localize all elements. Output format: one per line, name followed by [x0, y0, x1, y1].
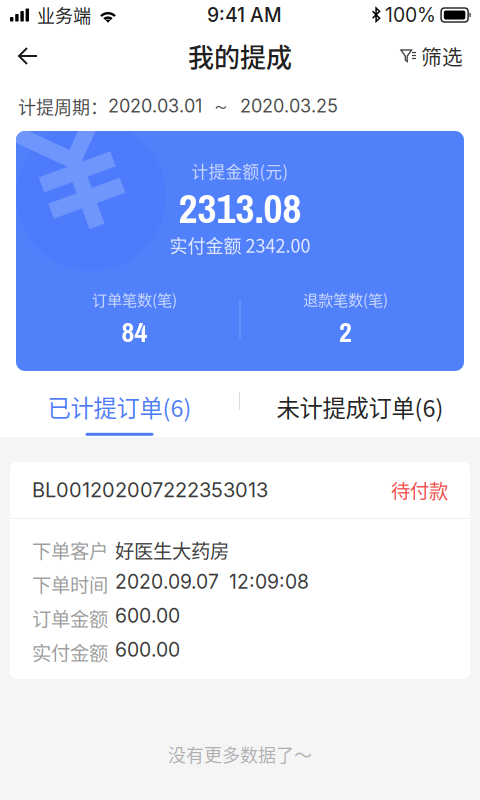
staticText: 好医生大药房 [115, 536, 229, 564]
staticText: 9:41 AM [207, 3, 282, 27]
staticText: 2313.08 [178, 180, 301, 236]
staticText: 下单客户 [32, 536, 108, 564]
button[interactable]: 已计提订单(6) [0, 376, 239, 442]
staticText: 业务端 [37, 2, 91, 28]
staticText: 2020.09.07 12:09:08 [115, 570, 309, 593]
staticText: 已计提订单(6) [47, 390, 191, 424]
staticText: 100% [385, 3, 436, 27]
staticText: 没有更多数据了～ [168, 741, 312, 767]
staticText: 筛选 [421, 41, 463, 71]
staticText: 订单金额 [32, 604, 108, 632]
staticText: 实付金额 [32, 638, 108, 666]
staticText: 实付金额 2342.00 [169, 232, 310, 258]
button[interactable]: 未计提成订单(6) [240, 376, 480, 442]
staticText: 600.00 [115, 604, 180, 627]
staticText: 下单时间 [32, 570, 108, 598]
staticText: 2020.03.01 ～ 2020.03.25 [108, 95, 338, 118]
staticText: 计提周期： [18, 93, 108, 120]
staticText: 84 [121, 313, 147, 351]
staticText: 订单笔数(笔) [92, 288, 177, 310]
button[interactable]: 返回 [5, 33, 51, 79]
staticText: 计提金额(元) [191, 159, 288, 183]
staticText: 待付款 [391, 476, 448, 504]
staticText: 我的提成 [188, 37, 292, 75]
staticText: BL001202007222353013 [32, 478, 268, 502]
staticText: 2 [339, 313, 352, 351]
staticText: 退款笔数(笔) [303, 288, 388, 310]
staticText: 600.00 [115, 638, 180, 661]
button[interactable]: 筛选 [386, 33, 475, 79]
staticText: 未计提成订单(6) [276, 390, 443, 424]
